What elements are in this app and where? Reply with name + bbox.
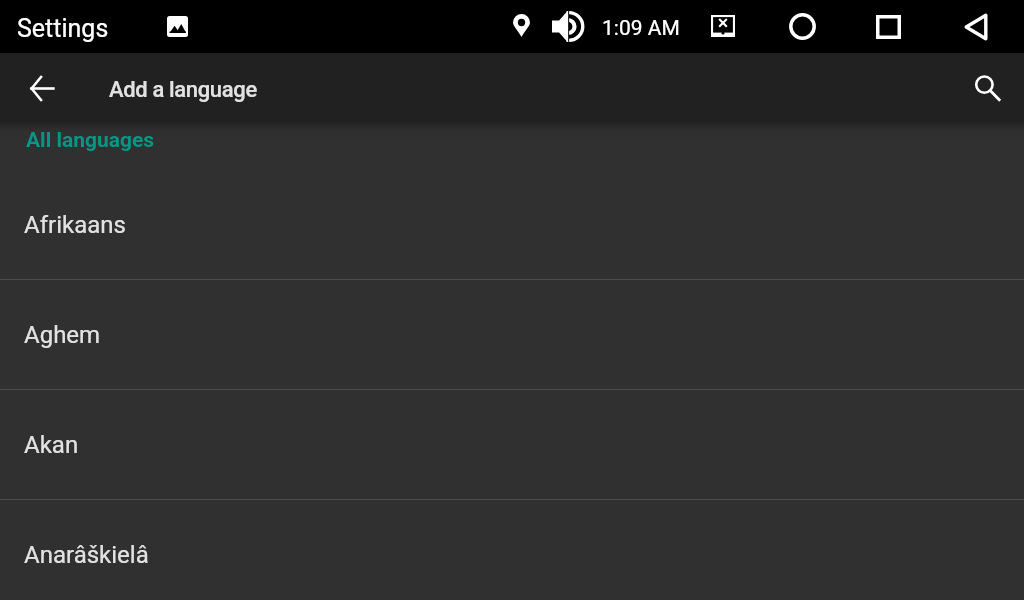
- staticText: Akan: [24, 431, 79, 459]
- staticText: Anarâškielâ: [24, 541, 149, 569]
- button[interactable]: Recent apps: [861, 0, 916, 53]
- staticText: Afrikaans: [24, 211, 126, 239]
- staticText: 1:09 AM: [602, 16, 680, 41]
- staticText: All languages: [26, 128, 155, 153]
- button[interactable]: Search: [963, 64, 1011, 112]
- staticText: Settings: [17, 14, 109, 43]
- button[interactable]: Anarâškielâ: [0, 500, 1024, 600]
- button[interactable]: Afrikaans: [0, 170, 1024, 279]
- button[interactable]: Akan: [0, 390, 1024, 499]
- button[interactable]: Home: [775, 0, 830, 53]
- staticText: Aghem: [24, 321, 101, 349]
- button[interactable]: Navigate up: [18, 64, 66, 112]
- button[interactable]: Aghem: [0, 280, 1024, 389]
- staticText: Add a language: [109, 77, 257, 103]
- button[interactable]: Back: [948, 0, 1003, 53]
